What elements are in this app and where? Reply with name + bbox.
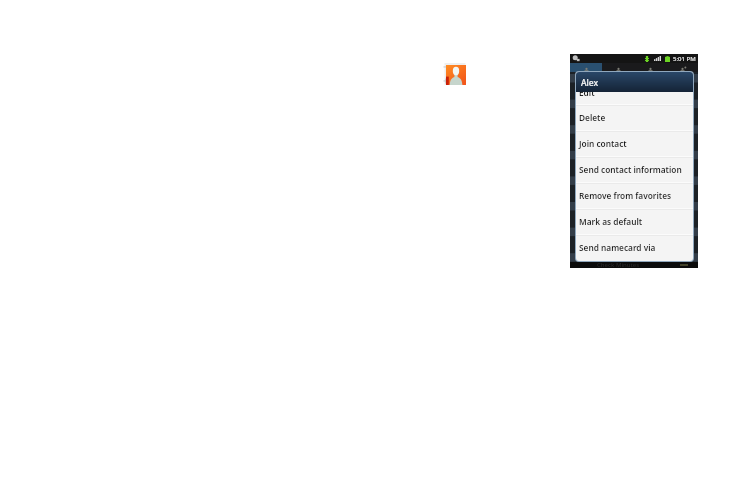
staticText: Check Minutes: [597, 261, 640, 269]
staticText: Join contact: [579, 138, 627, 149]
button[interactable]: Edit: [576, 79, 693, 104]
staticText: Edit: [579, 87, 595, 98]
button[interactable]: Remove from favorites: [576, 182, 693, 207]
button[interactable]: Join contact: [576, 130, 693, 155]
button[interactable]: Favorites: [634, 63, 666, 72]
button[interactable]: Contact photo: [443, 62, 468, 87]
button[interactable]: Mark as default: [576, 208, 693, 233]
staticText: Alex: [581, 77, 599, 89]
button[interactable]: Contacts: [666, 63, 698, 72]
button[interactable]: Keypad: [570, 63, 602, 72]
staticText: Delete: [579, 112, 606, 123]
staticText: Send namecard via: [579, 242, 656, 253]
staticText: Mark as default: [579, 216, 643, 227]
staticText: Remove from favorites: [579, 190, 672, 201]
staticText: 5:01 PM: [673, 55, 696, 63]
button[interactable]: Send contact information: [576, 156, 693, 181]
staticText: Send contact information: [579, 164, 682, 175]
button[interactable]: Logs: [602, 63, 634, 72]
button[interactable]: Delete: [576, 104, 693, 129]
button[interactable]: Send namecard via: [576, 234, 693, 259]
